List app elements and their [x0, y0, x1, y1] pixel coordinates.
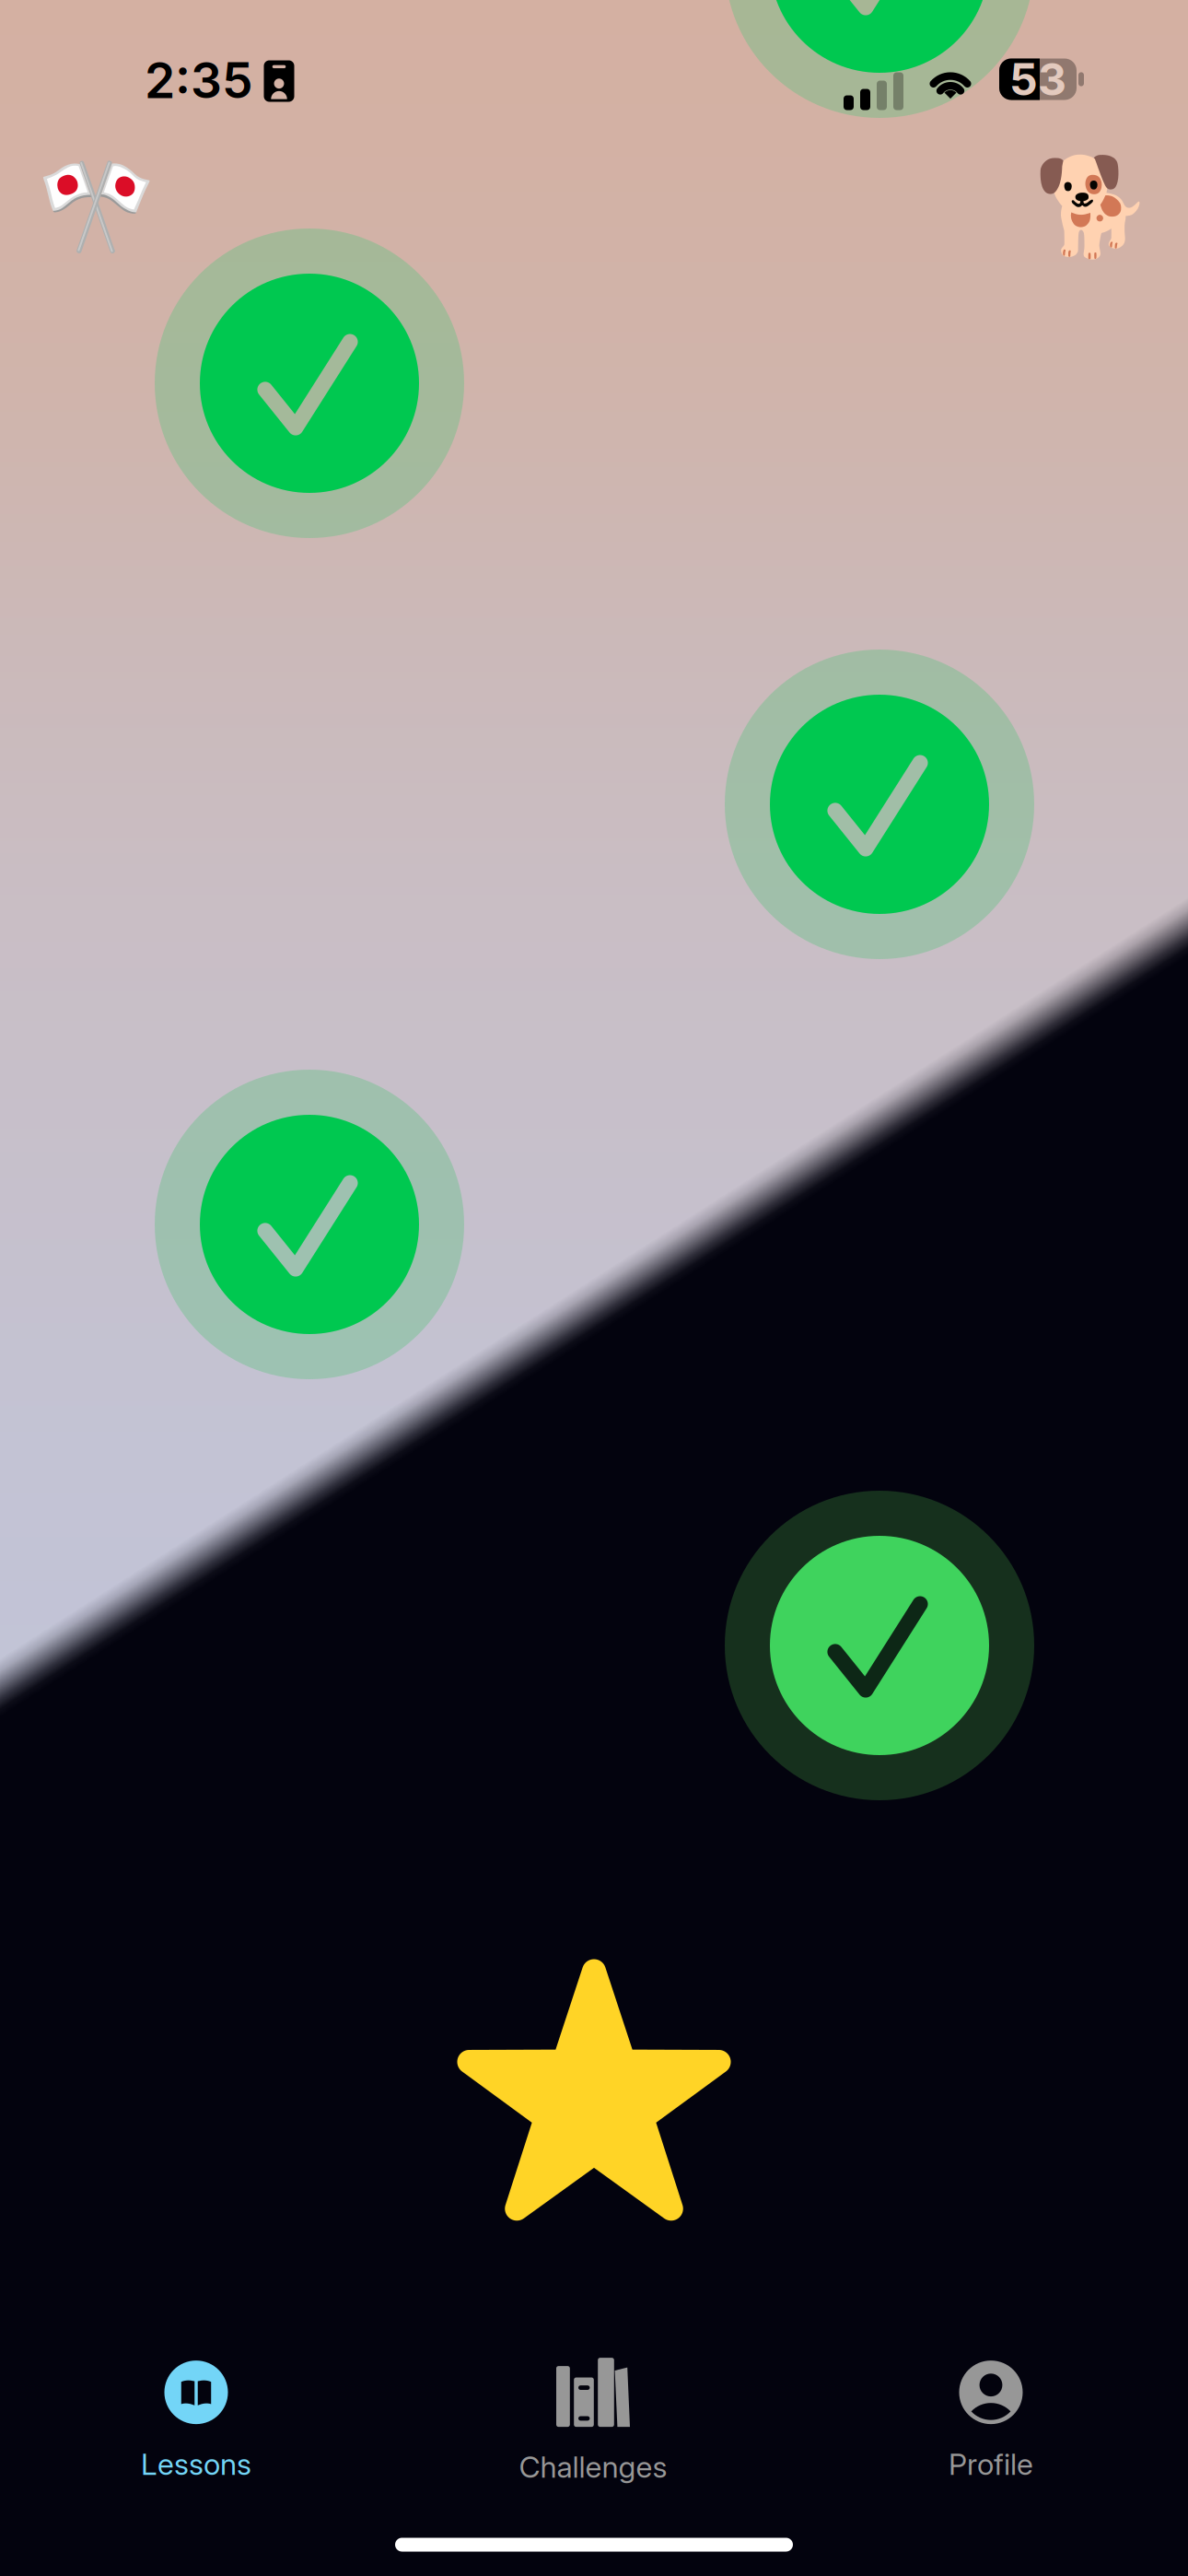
staticText: 🐕	[1033, 150, 1152, 263]
button[interactable]: Profile	[807, 2348, 1175, 2495]
staticText: 53	[1009, 53, 1066, 106]
staticText: Profile	[949, 2446, 1033, 2482]
button[interactable]: Language	[31, 142, 160, 271]
staticText: Lessons	[141, 2446, 251, 2482]
staticText: 2:35	[145, 50, 253, 110]
button[interactable]: Lessons	[12, 2348, 380, 2495]
button[interactable]: Challenges	[409, 2348, 777, 2495]
staticText: 🎌	[36, 150, 155, 263]
button[interactable]: Streak	[1028, 142, 1157, 271]
staticText: Challenges	[519, 2449, 667, 2485]
